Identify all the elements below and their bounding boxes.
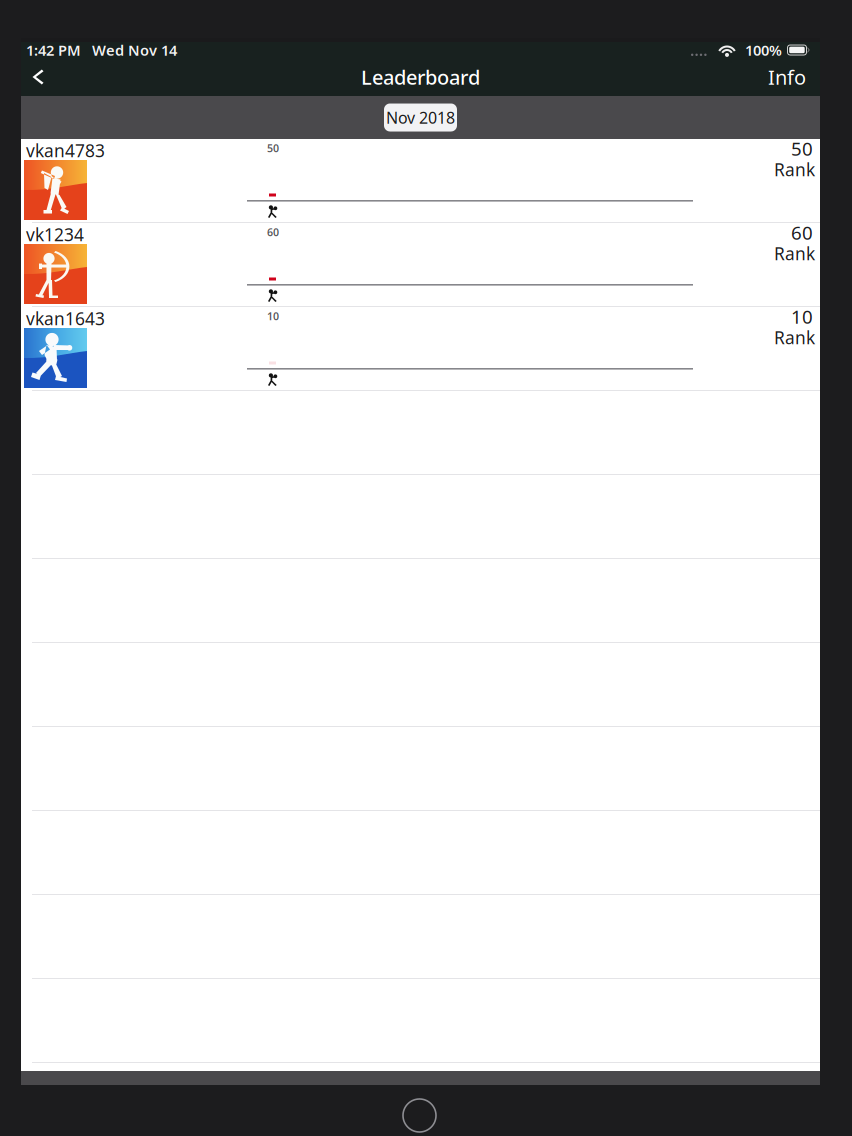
button[interactable]: Nov 2018 xyxy=(384,103,457,131)
staticText: Wed Nov 14 xyxy=(92,40,177,60)
staticText: 1:42 PM xyxy=(26,40,81,60)
button[interactable]: Info xyxy=(760,58,814,96)
staticText: Rank xyxy=(774,242,815,265)
staticText: Rank xyxy=(774,158,815,181)
staticText: 60 xyxy=(267,225,279,239)
staticText: 50 xyxy=(791,136,813,161)
staticText: vk1234 xyxy=(26,223,84,246)
staticText: Rank xyxy=(774,326,815,349)
button[interactable]: Back xyxy=(21,58,55,96)
staticText: 10 xyxy=(791,304,813,329)
staticText: 10 xyxy=(267,309,279,323)
button[interactable]: vk1234 xyxy=(21,223,820,307)
staticText: Nov 2018 xyxy=(386,107,455,128)
staticText: 60 xyxy=(791,220,813,245)
staticText: vkan4783 xyxy=(26,139,105,162)
staticText: vkan1643 xyxy=(26,307,105,330)
staticText: 50 xyxy=(267,141,279,155)
staticText: Info xyxy=(768,64,806,90)
button[interactable]: vkan1643 xyxy=(21,307,820,391)
button[interactable]: vkan4783 xyxy=(21,139,820,223)
staticText: Leaderboard xyxy=(361,64,480,90)
staticText: 100% xyxy=(745,40,782,60)
